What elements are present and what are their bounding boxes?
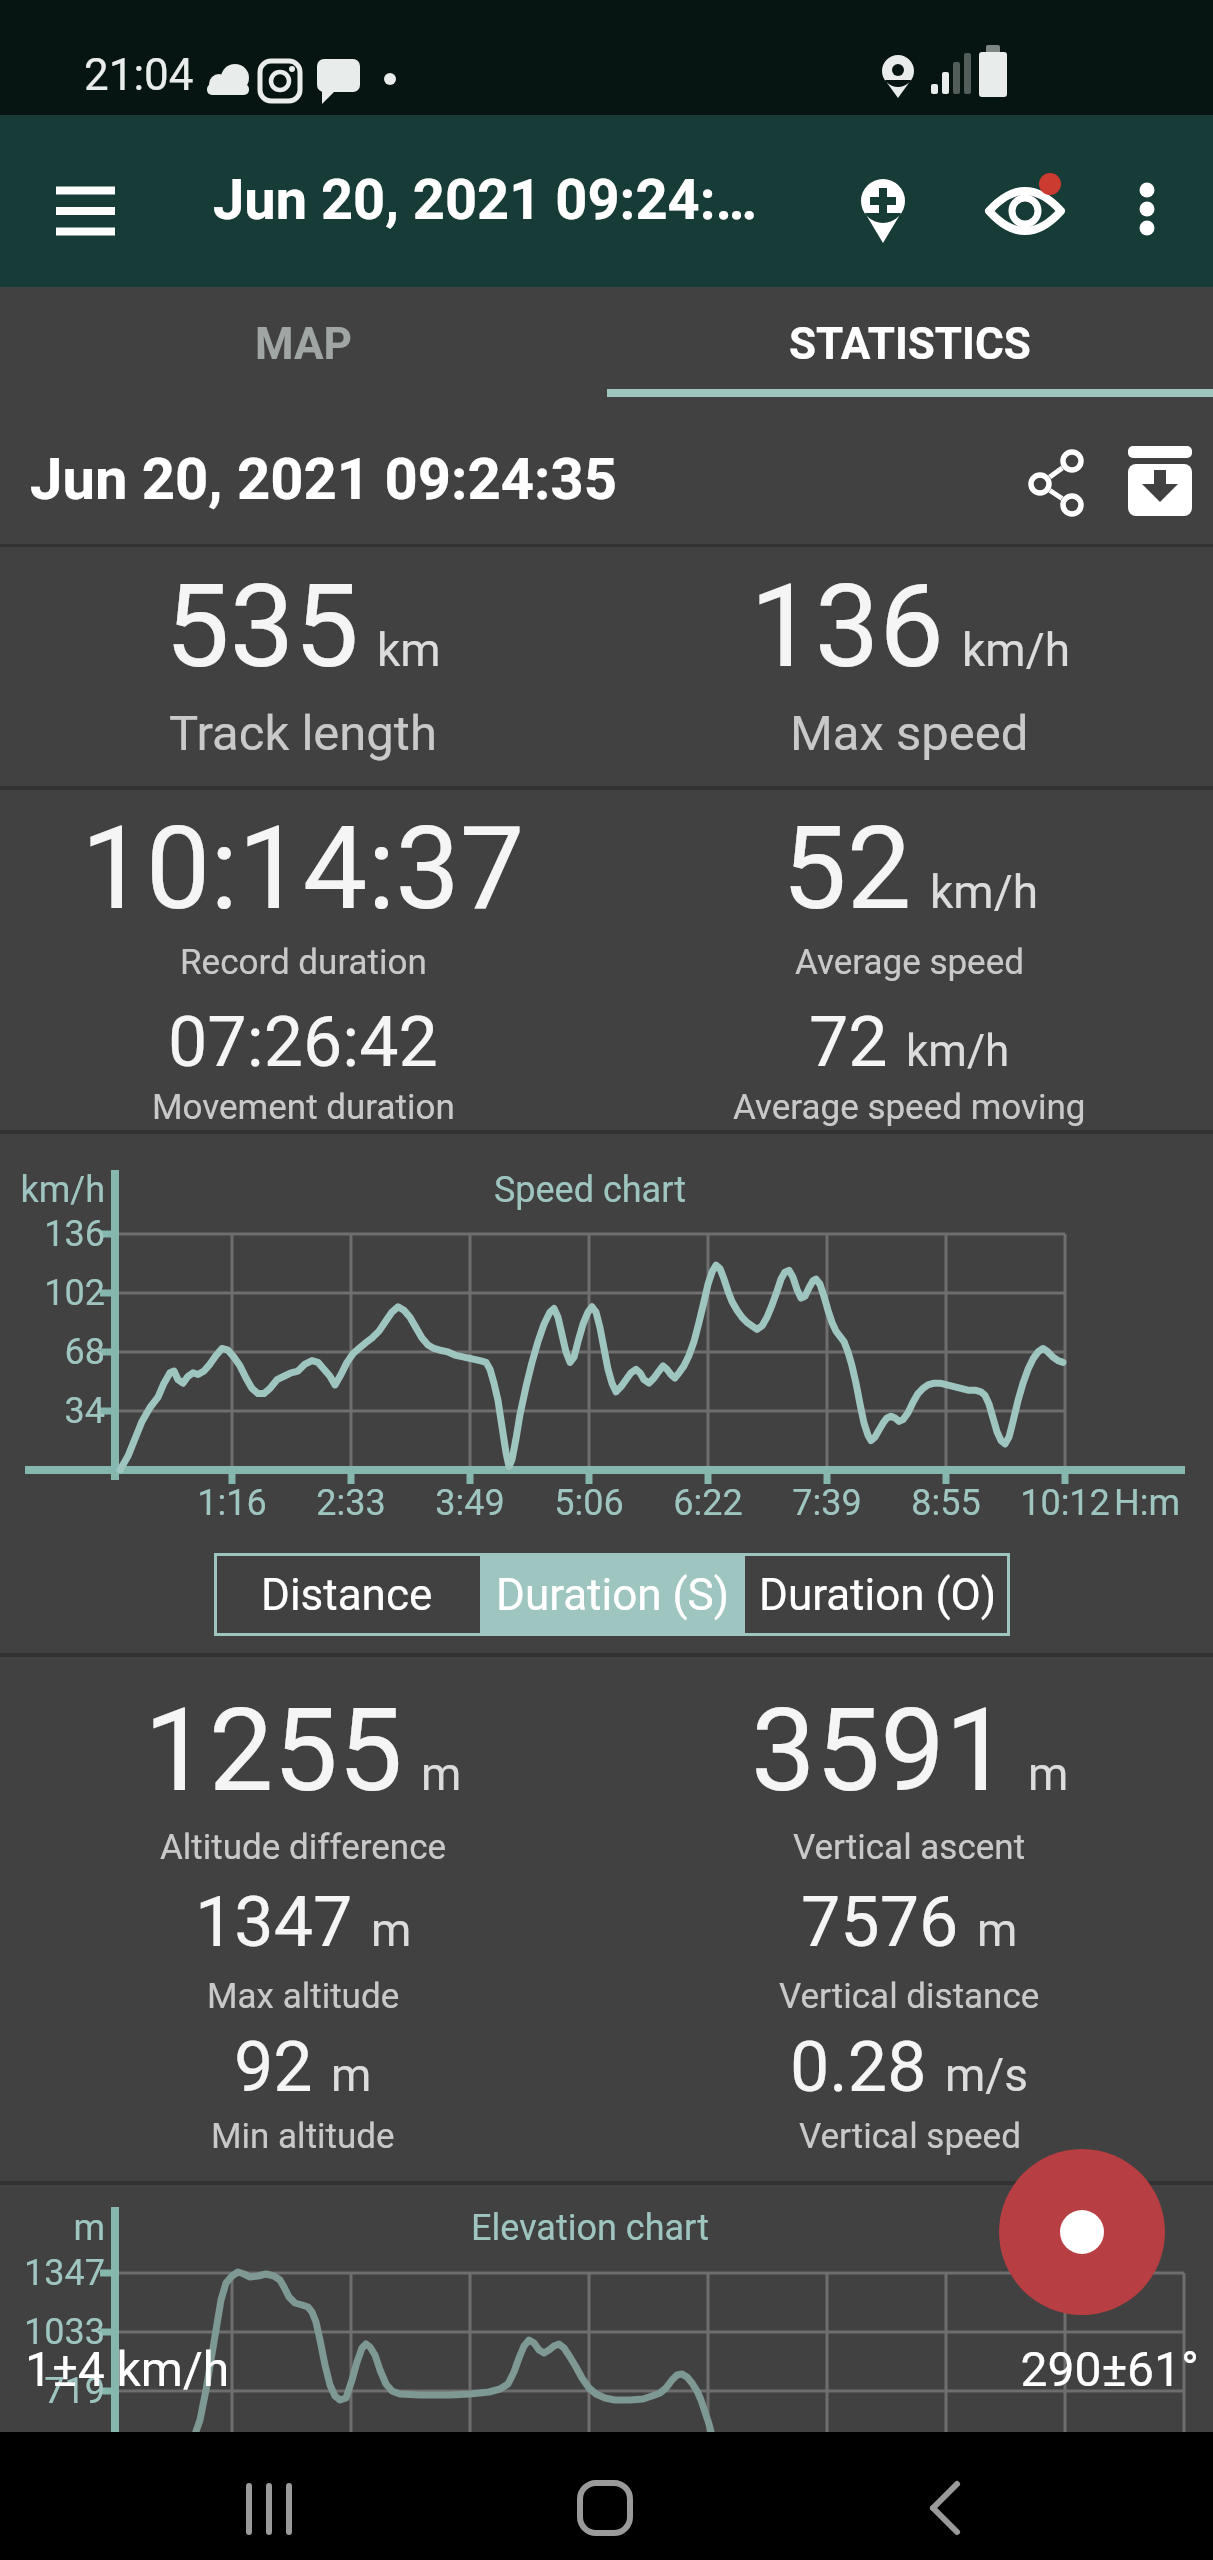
staticText: 2:33 xyxy=(291,1482,411,1524)
staticText: 92 xyxy=(234,2026,313,2108)
staticText: 719 xyxy=(10,2370,105,2412)
staticText: Jun 20, 2021 09:24:35 xyxy=(30,445,730,513)
staticText: Elevation chart xyxy=(465,2207,715,2249)
staticText: 7576 xyxy=(801,1881,959,1963)
staticText: 68 xyxy=(10,1331,105,1373)
staticText: 290±61° xyxy=(899,2341,1199,2397)
button[interactable] xyxy=(30,115,140,287)
button[interactable]: STATISTICS xyxy=(606,287,1213,400)
staticText: km/h xyxy=(10,1169,105,1211)
staticText: STATISTICS xyxy=(789,318,1031,370)
button[interactable] xyxy=(999,2149,1165,2315)
staticText: 5:06 xyxy=(529,1482,649,1524)
staticText: 1347 xyxy=(195,1881,353,1963)
staticText: Max speed xyxy=(790,705,1029,762)
staticText: 102 xyxy=(10,1272,105,1314)
staticText: 1±4 km/h xyxy=(25,2341,345,2397)
staticText: 0.28 xyxy=(790,2026,927,2108)
button[interactable] xyxy=(885,2446,1005,2546)
staticText: 1:16 xyxy=(172,1482,292,1524)
staticText: m xyxy=(331,2048,372,2102)
staticText: Duration (S) xyxy=(496,1569,730,1621)
staticText: Vertical speed xyxy=(799,2116,1021,2157)
staticText: Speed chart xyxy=(490,1169,690,1211)
button[interactable] xyxy=(970,115,1080,287)
button[interactable] xyxy=(1012,435,1102,535)
staticText: 52 xyxy=(782,801,912,936)
staticText: Vertical distance xyxy=(779,1976,1040,2017)
staticText: m xyxy=(977,1903,1018,1957)
staticText: 7:39 xyxy=(767,1482,887,1524)
staticText: 21:04 xyxy=(84,49,204,101)
staticText: Movement duration xyxy=(152,1087,455,1128)
button[interactable] xyxy=(209,2446,329,2546)
staticText: Average speed xyxy=(795,942,1024,983)
staticText: 1255 xyxy=(144,1683,403,1818)
staticText: km xyxy=(377,623,441,677)
staticText: 07:26:42 xyxy=(168,1001,438,1083)
staticText: 1347 xyxy=(10,2252,105,2294)
staticText: 136 xyxy=(10,1213,105,1255)
staticText: 34 xyxy=(10,1390,105,1432)
staticText: Duration (O) xyxy=(759,1569,997,1621)
staticText: m xyxy=(421,1747,462,1801)
button[interactable] xyxy=(838,115,928,287)
staticText: 3:49 xyxy=(410,1482,530,1524)
staticText: Min altitude xyxy=(211,2116,395,2157)
staticText: 72 xyxy=(809,1001,888,1083)
button[interactable]: Duration (O) xyxy=(745,1553,1010,1636)
staticText: km/h xyxy=(906,1025,1010,1077)
staticText: m xyxy=(371,1903,412,1957)
button[interactable]: Distance xyxy=(214,1553,480,1636)
staticText: Track length xyxy=(169,705,437,762)
button[interactable] xyxy=(1107,115,1187,287)
staticText: Average speed moving xyxy=(733,1087,1086,1128)
button[interactable] xyxy=(545,2446,665,2546)
staticText: Jun 20, 2021 09:24:… xyxy=(213,167,813,233)
staticText: 8:55 xyxy=(886,1482,1006,1524)
staticText: 10:12 xyxy=(1005,1482,1125,1524)
staticText: km/h xyxy=(962,623,1070,677)
staticText: 535 xyxy=(165,559,359,694)
staticText: km/h xyxy=(930,865,1038,919)
button[interactable] xyxy=(1118,440,1203,525)
staticText: MAP xyxy=(255,318,352,370)
staticText: m xyxy=(1028,1747,1069,1801)
staticText: Max altitude xyxy=(207,1976,400,2017)
staticText: 10:14:37 xyxy=(81,801,525,936)
staticText: Altitude difference xyxy=(160,1827,447,1868)
staticText: m/s xyxy=(945,2048,1029,2102)
staticText: Distance xyxy=(261,1569,433,1621)
staticText: 6:22 xyxy=(648,1482,768,1524)
staticText: Record duration xyxy=(180,942,427,983)
button[interactable]: MAP xyxy=(0,287,606,400)
staticText: 1033 xyxy=(10,2311,105,2353)
staticText: H:m xyxy=(1087,1482,1207,1524)
staticText: 3591 xyxy=(751,1683,1010,1818)
button[interactable]: Duration (S) xyxy=(480,1553,745,1636)
staticText: m xyxy=(10,2207,105,2249)
staticText: Vertical ascent xyxy=(793,1827,1026,1868)
staticText: 136 xyxy=(750,559,944,694)
